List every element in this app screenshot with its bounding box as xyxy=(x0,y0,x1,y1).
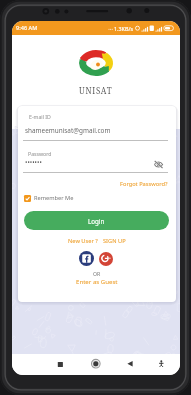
button[interactable]: New User ? xyxy=(68,237,98,245)
staticText: Login xyxy=(88,217,105,225)
button[interactable]: Forgot Password? xyxy=(120,180,168,188)
button[interactable]: Remember Me xyxy=(24,194,74,202)
button[interactable]: Sign in with Facebook xyxy=(79,251,94,266)
staticText: E-mail ID xyxy=(29,113,51,120)
button[interactable]: Enter as Guest xyxy=(76,277,118,285)
button[interactable]: Show password xyxy=(154,161,163,168)
button[interactable]: SIGN UP xyxy=(103,237,126,245)
staticText: shameemunisat@gmail.com xyxy=(25,126,111,135)
staticText: OR xyxy=(93,270,101,277)
staticText: 9:46 AM xyxy=(16,24,38,32)
button[interactable]: Sign in with Google xyxy=(99,252,113,266)
staticText: 1.3KB/s xyxy=(114,25,134,32)
staticText: Remember Me xyxy=(34,194,74,202)
staticText: ••••••• xyxy=(25,158,42,167)
staticText: Password xyxy=(28,150,52,157)
staticText: UNISAT xyxy=(79,85,113,96)
button[interactable]: Login xyxy=(24,211,169,230)
